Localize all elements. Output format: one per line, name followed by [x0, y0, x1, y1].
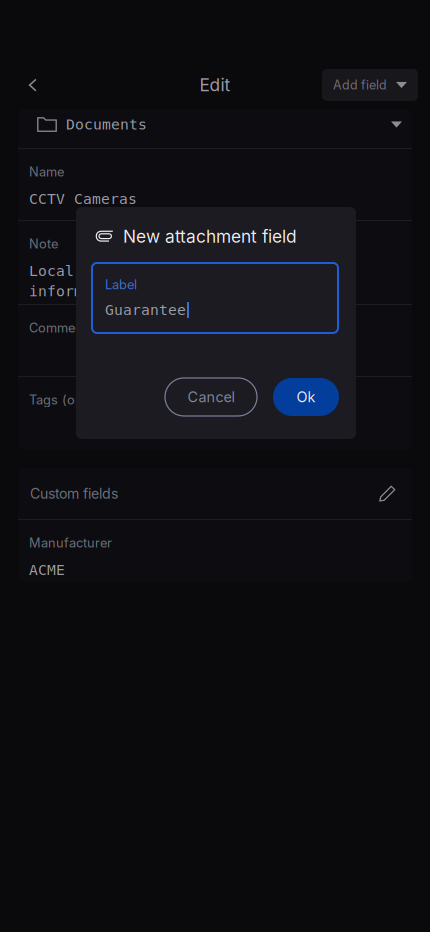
- staticText: Documents: [66, 116, 147, 133]
- staticText: Name: [29, 164, 64, 179]
- staticText: Label: [105, 277, 137, 292]
- staticText: Edit: [199, 74, 230, 95]
- staticText: Local network: [29, 262, 146, 280]
- staticText: Comment: [29, 320, 87, 335]
- button[interactable]: Custom fields: [18, 468, 412, 519]
- staticText: information: [29, 283, 128, 300]
- staticText: CCTV Cameras: [29, 190, 137, 208]
- staticText: Add field: [333, 77, 387, 92]
- staticText: Manufacturer: [29, 535, 112, 550]
- staticText: Ok: [296, 388, 315, 406]
- staticText: New attachment field: [123, 226, 297, 247]
- button[interactable]: Add field: [322, 69, 418, 101]
- staticText: Note: [29, 236, 58, 251]
- button[interactable]: Back: [11, 64, 55, 106]
- button[interactable]: Ok: [273, 378, 339, 416]
- staticText: Guarantee: [105, 301, 186, 319]
- staticText: Tags (optional): [29, 392, 121, 407]
- staticText: Custom fields: [30, 485, 118, 502]
- staticText: ACME: [29, 561, 65, 579]
- staticText: Cancel: [187, 388, 234, 406]
- button[interactable]: Cancel: [165, 378, 257, 416]
- button[interactable]: Documents: [18, 109, 412, 148]
